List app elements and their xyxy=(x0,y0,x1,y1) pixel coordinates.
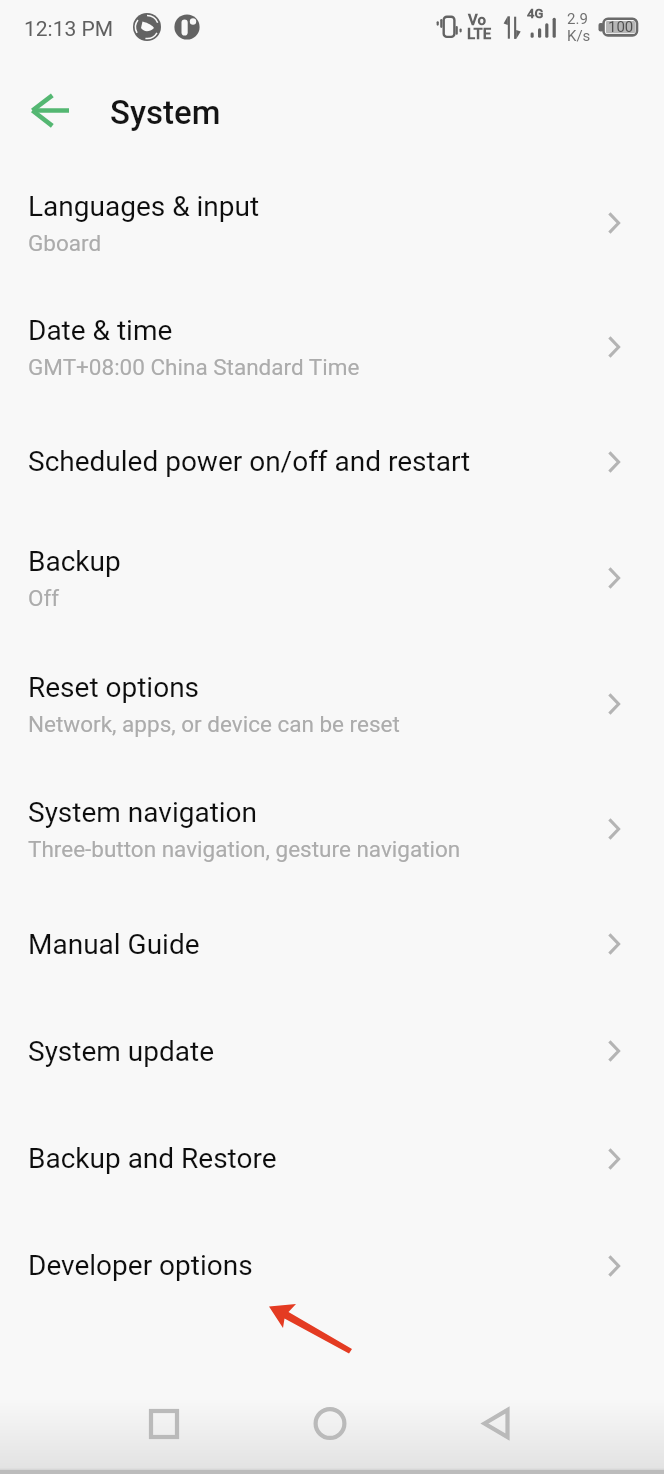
staticText: System update xyxy=(28,1035,215,1068)
staticText: K/s xyxy=(567,27,591,45)
staticText: Vo xyxy=(468,11,486,29)
button[interactable]: Back xyxy=(456,1398,536,1474)
staticText: Reset options xyxy=(28,671,200,704)
staticText: Network, apps, or device can be reset xyxy=(28,711,400,737)
staticText: System xyxy=(110,93,221,132)
staticText: Languages & input xyxy=(28,190,260,223)
staticText: Developer options xyxy=(28,1249,253,1282)
staticText: LTE xyxy=(467,25,492,43)
staticText: Manual Guide xyxy=(28,928,200,961)
staticText: Scheduled power on/off and restart xyxy=(28,445,471,478)
staticText: Backup xyxy=(28,545,121,578)
button[interactable]: Back xyxy=(8,82,80,134)
button[interactable]: Scheduled power on/off and restart xyxy=(0,409,664,514)
staticText: 100 xyxy=(608,18,634,36)
staticText: 4G xyxy=(527,6,544,21)
button[interactable]: Home xyxy=(290,1398,370,1474)
button[interactable]: Backup and Restore xyxy=(0,1105,664,1212)
button[interactable]: Reset options xyxy=(0,641,664,766)
button[interactable]: Languages & input xyxy=(0,160,664,285)
staticText: Three-button navigation, gesture navigat… xyxy=(28,836,461,862)
button[interactable]: Developer options xyxy=(0,1212,664,1319)
staticText: 2.9 xyxy=(567,10,588,28)
button[interactable]: Recent apps xyxy=(124,1398,204,1474)
button[interactable]: Manual Guide xyxy=(0,891,664,997)
button[interactable]: System update xyxy=(0,997,664,1105)
button[interactable]: Date & time xyxy=(0,285,664,409)
staticText: Off xyxy=(28,585,60,611)
staticText: System navigation xyxy=(28,796,258,829)
staticText: 12:13 PM xyxy=(24,17,114,42)
staticText: Backup and Restore xyxy=(28,1142,277,1175)
button[interactable]: Backup xyxy=(0,514,664,641)
staticText: Date & time xyxy=(28,314,173,347)
staticText: Gboard xyxy=(28,230,102,256)
staticText: GMT+08:00 China Standard Time xyxy=(28,354,360,380)
button[interactable]: System navigation xyxy=(0,766,664,891)
